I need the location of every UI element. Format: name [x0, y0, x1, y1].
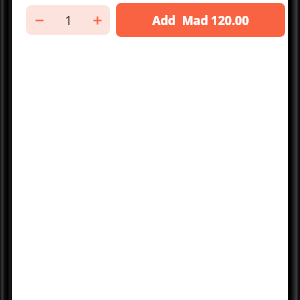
button[interactable]: Increase quantity [84, 5, 110, 35]
button[interactable]: Decrease quantity [26, 5, 52, 35]
button[interactable]: Add Mad 120.00 [116, 3, 285, 37]
staticText: Add Mad 120.00 [152, 12, 249, 28]
staticText: 1 [65, 12, 72, 28]
